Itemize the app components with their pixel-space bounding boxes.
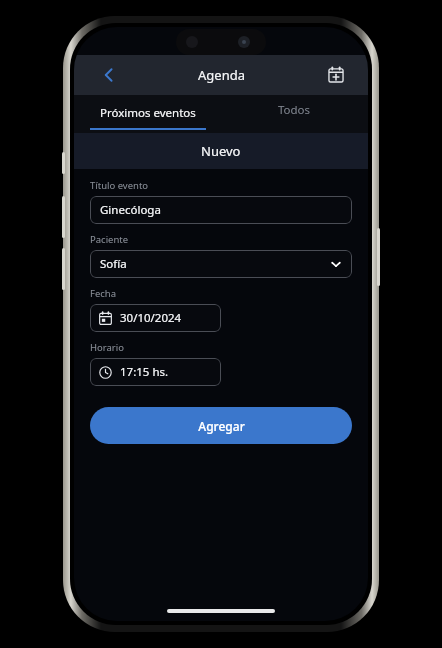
button[interactable]: 17:15 hs. bbox=[90, 358, 221, 386]
staticText: Próximos eventos bbox=[100, 105, 196, 121]
staticText: Nuevo bbox=[201, 142, 241, 160]
button[interactable]: Sofía bbox=[90, 250, 352, 278]
button[interactable]: Back bbox=[94, 60, 124, 90]
staticText: Paciente bbox=[90, 233, 129, 246]
button[interactable]: Todos bbox=[221, 95, 368, 133]
button[interactable]: Add event bbox=[322, 61, 350, 89]
button[interactable]: Ginecóloga bbox=[90, 196, 352, 224]
button[interactable]: Próximos eventos bbox=[74, 95, 221, 133]
staticText: Todos bbox=[278, 102, 311, 118]
button[interactable]: 30/10/2024 bbox=[90, 304, 221, 332]
staticText: Título evento bbox=[90, 179, 149, 192]
staticText: Horario bbox=[90, 341, 124, 354]
staticText: Agregar bbox=[198, 418, 245, 434]
staticText: Ginecóloga bbox=[100, 202, 161, 218]
staticText: Fecha bbox=[90, 287, 117, 300]
button[interactable]: Agregar bbox=[90, 407, 352, 444]
staticText: Sofía bbox=[100, 256, 127, 272]
staticText: 30/10/2024 bbox=[120, 310, 182, 326]
staticText: 17:15 hs. bbox=[120, 364, 169, 380]
staticText: Agenda bbox=[198, 66, 245, 84]
